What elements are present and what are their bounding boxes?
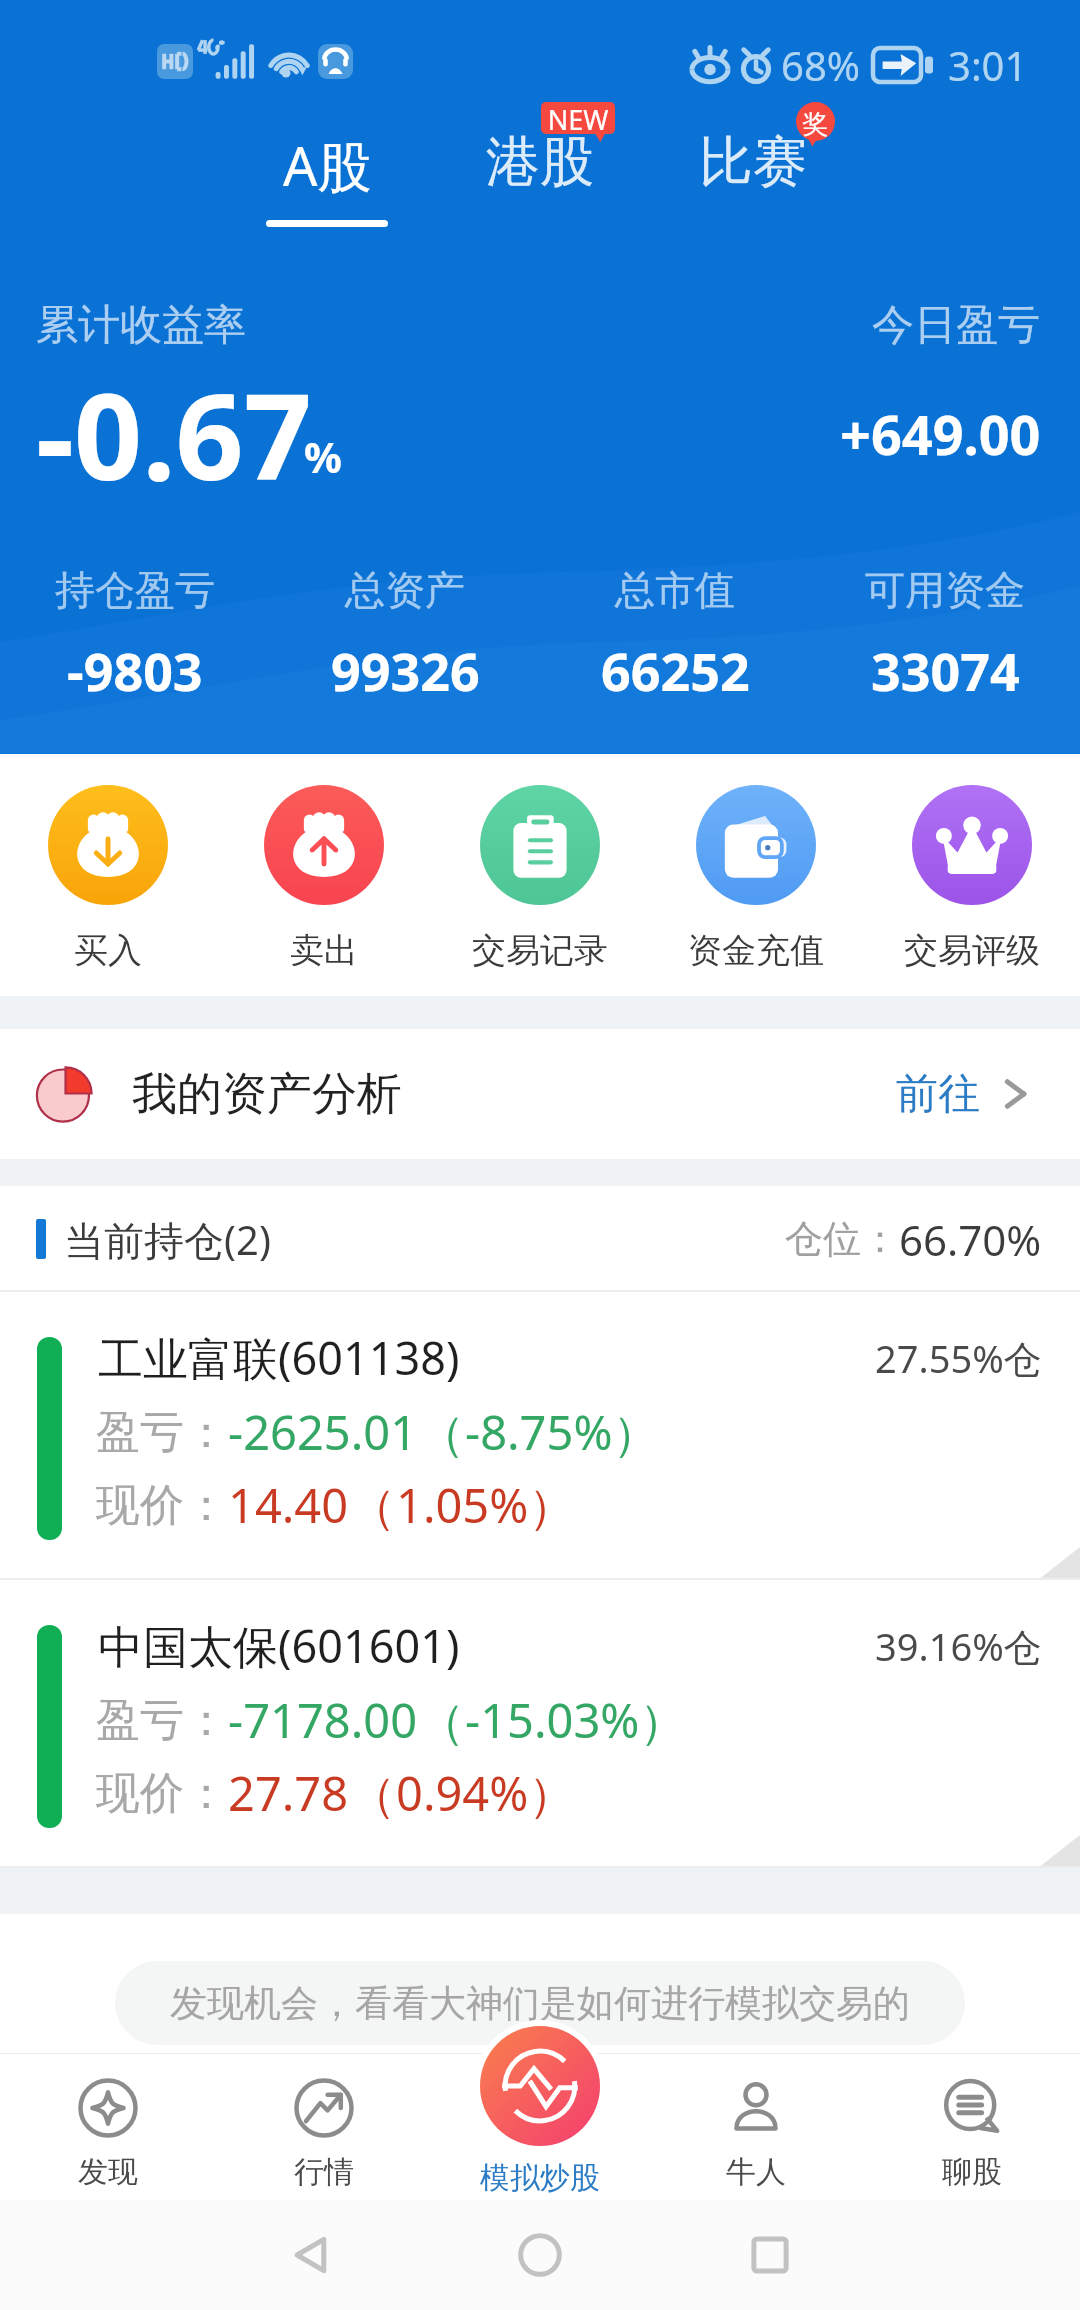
button[interactable]: 比赛 <box>681 128 825 196</box>
staticText: 14.40 <box>228 1473 349 1537</box>
staticText: 仓位： <box>785 1215 899 1263</box>
staticText: NEW <box>541 101 615 138</box>
staticText: 总资产 <box>345 565 465 615</box>
staticText: （1.05%） <box>349 1473 576 1537</box>
staticText: 66252 <box>601 635 750 706</box>
button[interactable]: 我的资产分析 <box>0 1029 1080 1159</box>
staticText: -9803 <box>67 635 203 706</box>
staticText: 今日盈亏 <box>872 299 1040 352</box>
staticText: +649.00 <box>840 397 1041 471</box>
button[interactable]: 资金充值 <box>648 785 864 972</box>
button[interactable]: Home <box>485 2200 595 2310</box>
staticText: 66.70% <box>899 1211 1042 1268</box>
staticText: 现价： <box>96 1478 228 1533</box>
staticText: 牛人 <box>726 2153 786 2191</box>
staticText: 39.16%仓 <box>875 1620 1042 1672</box>
button[interactable]: 发现机会，看看大神们是如何进行模拟交易的 <box>115 1961 965 2045</box>
staticText: 盈亏： <box>96 1693 228 1748</box>
button[interactable]: 工业富联(601138) <box>0 1292 1080 1580</box>
staticText: （0.94%） <box>349 1761 576 1825</box>
staticText: 行情 <box>294 2153 354 2191</box>
staticText: 聊股 <box>942 2153 1002 2191</box>
button[interactable]: 港股 <box>468 128 612 196</box>
staticText: 奖 <box>796 108 835 141</box>
button[interactable]: 行情 <box>216 2054 432 2200</box>
staticText: % <box>304 428 342 485</box>
button[interactable]: 交易评级 <box>864 785 1080 972</box>
staticText: 发现 <box>78 2153 138 2191</box>
staticText: 比赛 <box>699 128 807 196</box>
staticText: 累计收益率 <box>36 299 246 352</box>
staticText: 发现机会，看看大神们是如何进行模拟交易的 <box>170 1980 910 2027</box>
staticText: 99326 <box>331 635 480 706</box>
staticText: 27.78 <box>228 1761 349 1825</box>
staticText: 买入 <box>74 929 142 972</box>
button[interactable]: Recents <box>715 2200 825 2310</box>
staticText: 可用资金 <box>865 565 1025 615</box>
staticText: -2625.01 <box>228 1400 418 1464</box>
staticText: 工业富联(601138) <box>98 1327 460 1388</box>
staticText: （-15.03%） <box>418 1688 687 1752</box>
staticText: 港股 <box>486 128 594 196</box>
button[interactable]: 模拟炒股 <box>432 2054 648 2200</box>
staticText: 总市值 <box>615 565 735 615</box>
staticText: -7178.00 <box>228 1688 418 1752</box>
button[interactable]: A股 <box>255 128 399 227</box>
staticText: 3:01 <box>948 38 1028 92</box>
staticText: A股 <box>283 128 372 202</box>
staticText: （-8.75%） <box>418 1400 660 1464</box>
staticText: -0.67 <box>36 353 312 515</box>
staticText: 模拟炒股 <box>480 2159 600 2197</box>
staticText: 交易评级 <box>904 929 1040 972</box>
button[interactable]: 卖出 <box>216 785 432 972</box>
staticText: 中国太保(601601) <box>98 1615 460 1676</box>
button[interactable]: 发现 <box>0 2054 216 2200</box>
staticText: 交易记录 <box>472 929 608 972</box>
staticText: 前往 <box>896 1068 980 1121</box>
button[interactable]: 买入 <box>0 785 216 972</box>
staticText: 27.55%仓 <box>875 1332 1042 1384</box>
staticText: 资金充值 <box>688 929 824 972</box>
button[interactable]: 聊股 <box>864 2054 1080 2200</box>
button[interactable]: Back <box>255 2200 365 2310</box>
staticText: 68% <box>781 38 860 92</box>
staticText: 卖出 <box>290 929 358 972</box>
button[interactable]: 交易记录 <box>432 785 648 972</box>
staticText: 持仓盈亏 <box>55 565 215 615</box>
staticText: 现价： <box>96 1766 228 1821</box>
staticText: 当前持仓(2) <box>64 1212 271 1267</box>
button[interactable]: 模拟炒股 <box>480 2026 600 2197</box>
button[interactable]: 中国太保(601601) <box>0 1580 1080 1868</box>
staticText: 33074 <box>871 635 1020 706</box>
staticText: 我的资产分析 <box>132 1066 402 1123</box>
button[interactable]: 牛人 <box>648 2054 864 2200</box>
staticText: 盈亏： <box>96 1405 228 1460</box>
